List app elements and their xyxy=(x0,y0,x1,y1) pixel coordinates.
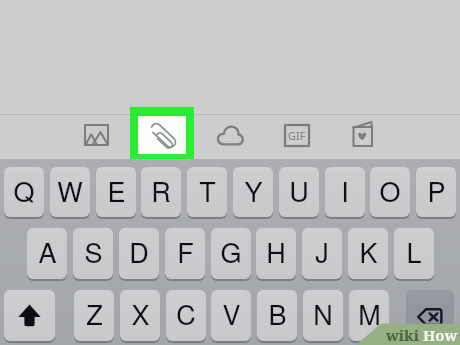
button[interactable] xyxy=(406,290,454,341)
other: Backspace xyxy=(406,290,454,343)
staticText: T xyxy=(199,171,216,210)
button[interactable]: L xyxy=(394,228,434,279)
button[interactable]: D xyxy=(119,228,159,279)
staticText: X xyxy=(131,294,150,333)
button[interactable]: B xyxy=(257,290,297,341)
button[interactable]: Z xyxy=(74,290,114,341)
button[interactable]: F xyxy=(165,228,205,279)
staticText: O xyxy=(379,171,401,210)
button[interactable]: N xyxy=(303,290,343,341)
button[interactable]: E xyxy=(96,167,136,217)
button[interactable]: M xyxy=(349,290,389,341)
staticText: C xyxy=(176,294,196,333)
button[interactable]: C xyxy=(166,290,206,341)
button[interactable]: V xyxy=(211,290,251,341)
button[interactable]: X xyxy=(120,290,160,341)
button[interactable]: Y xyxy=(233,167,273,217)
staticText: D xyxy=(129,232,149,271)
button[interactable]: R xyxy=(141,167,181,217)
button[interactable]: U xyxy=(279,167,319,217)
staticText: A xyxy=(38,232,57,271)
staticText: S xyxy=(84,232,103,271)
button[interactable] xyxy=(4,290,55,341)
button[interactable]: G xyxy=(211,228,251,279)
staticText: Q xyxy=(13,171,35,210)
button[interactable]: S xyxy=(73,228,113,279)
staticText: F xyxy=(177,232,194,271)
staticText: R xyxy=(151,171,171,210)
button[interactable]: Attach file xyxy=(130,107,194,163)
staticText: K xyxy=(359,232,378,271)
button[interactable]: O xyxy=(370,167,410,217)
button[interactable]: A xyxy=(27,228,67,279)
staticText: How xyxy=(423,325,458,345)
staticText: G xyxy=(220,232,242,271)
button[interactable]: K xyxy=(348,228,388,279)
staticText: I xyxy=(341,171,349,210)
staticText: H xyxy=(266,232,286,271)
button[interactable]: Cloud xyxy=(216,123,244,146)
staticText: P xyxy=(427,171,446,210)
button[interactable]: H xyxy=(256,228,296,279)
staticText: Y xyxy=(244,171,263,210)
button[interactable]: I xyxy=(325,167,365,217)
staticText: J xyxy=(315,232,329,271)
staticText: M xyxy=(358,294,381,333)
button[interactable]: P xyxy=(416,167,456,217)
other: Shift xyxy=(4,290,55,343)
staticText: W xyxy=(57,171,83,210)
staticText: GIF xyxy=(288,128,306,143)
button[interactable]: J xyxy=(302,228,342,279)
staticText: U xyxy=(289,171,309,210)
staticText: V xyxy=(222,294,241,333)
staticText: N xyxy=(313,294,333,333)
button[interactable]: T xyxy=(187,167,227,217)
button[interactable]: Q xyxy=(4,167,44,217)
button[interactable]: W xyxy=(50,167,90,217)
staticText: Z xyxy=(86,294,103,333)
staticText: wiki xyxy=(386,325,419,345)
staticText: B xyxy=(268,294,287,333)
button[interactable]: Photo xyxy=(84,124,109,146)
button[interactable]: Greeting card xyxy=(351,120,375,147)
button[interactable]: GIF xyxy=(285,125,309,146)
staticText: L xyxy=(406,232,422,271)
staticText: E xyxy=(107,171,126,210)
